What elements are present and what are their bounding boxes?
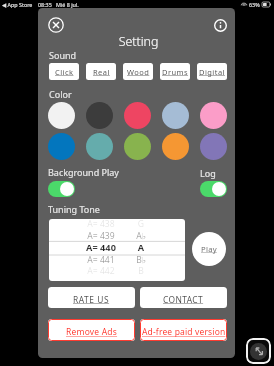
button[interactable]: Click <box>49 63 79 80</box>
button[interactable]: Color option <box>200 133 227 160</box>
button[interactable]: Play <box>192 232 226 266</box>
staticText: Wood <box>127 67 150 77</box>
button[interactable]: Ad-free paid version <box>140 319 227 341</box>
staticText: CONTACT <box>163 294 204 305</box>
button[interactable]: Drums <box>160 63 190 80</box>
staticText: Tuning Tone <box>48 203 100 215</box>
staticText: Color <box>49 88 72 100</box>
staticText: Click <box>55 67 74 77</box>
button[interactable]: RATE US <box>48 287 135 308</box>
button[interactable]: Color option <box>162 102 189 129</box>
staticText: A= 441 <box>63 254 139 266</box>
staticText: Real <box>93 67 110 77</box>
staticText: A= 438 <box>63 219 139 230</box>
button[interactable]: Toggle <box>200 181 227 197</box>
staticText: B♭ <box>121 254 161 266</box>
staticText: B <box>121 265 161 277</box>
staticText: A= 439 <box>63 230 139 242</box>
staticText: Background Play <box>48 166 119 178</box>
button[interactable]: Remove Ads <box>48 319 135 341</box>
button[interactable]: Wood <box>123 63 153 80</box>
staticText: G <box>121 219 161 230</box>
button[interactable]: Close <box>48 17 64 33</box>
staticText: Setting <box>40 33 235 50</box>
staticText: Log <box>200 167 216 179</box>
button[interactable]: Color option <box>48 102 75 129</box>
staticText: RATE US <box>73 294 110 305</box>
staticText: 08:35 <box>38 1 52 8</box>
button[interactable]: Color option <box>162 133 189 160</box>
staticText: Ad-free paid version <box>142 326 226 338</box>
staticText: A= 440 <box>63 241 139 254</box>
staticText: A♭ <box>121 230 161 242</box>
button[interactable]: Color option <box>48 133 75 160</box>
button[interactable]: Digital <box>197 63 227 80</box>
staticText: Digital <box>199 67 225 77</box>
staticText: Play <box>201 244 217 254</box>
button[interactable]: CONTACT <box>140 287 227 308</box>
button[interactable]: Real <box>86 63 116 80</box>
button[interactable]: Minimize <box>246 338 271 364</box>
staticText: Drums <box>162 67 189 77</box>
button[interactable]: Color option <box>200 102 227 129</box>
staticText: A= 442 <box>63 265 139 277</box>
staticText: Mié 8 jul. <box>56 1 79 8</box>
button[interactable]: Color option <box>124 133 151 160</box>
staticText: 63% <box>249 1 260 8</box>
button[interactable]: Color option <box>86 133 113 160</box>
button[interactable]: Color option <box>124 102 151 129</box>
staticText: Remove Ads <box>66 326 118 338</box>
button[interactable]: Info <box>214 19 227 32</box>
staticText: ◀ App Store <box>2 1 33 8</box>
staticText: A <box>121 241 161 254</box>
button[interactable]: Color option <box>86 102 113 129</box>
button[interactable]: Toggle <box>48 181 75 197</box>
staticText: Sound <box>49 49 77 61</box>
